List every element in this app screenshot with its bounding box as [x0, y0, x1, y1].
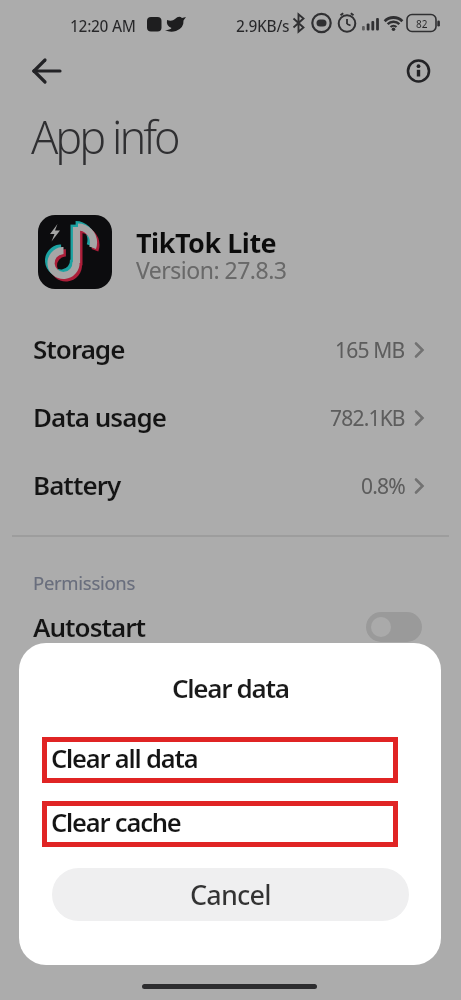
staticText: 12:20 AM	[70, 15, 136, 36]
staticText: Clear data	[172, 670, 289, 705]
button[interactable]	[24, 56, 68, 88]
staticText: Permissions	[33, 570, 136, 595]
button[interactable]: Autostart	[0, 605, 461, 650]
button[interactable]: Cancel	[52, 868, 409, 921]
staticText: TikTok Lite	[136, 224, 277, 254]
staticText: Clear all data	[51, 741, 198, 776]
staticText: Clear cache	[51, 805, 181, 840]
staticText: Cancel	[190, 876, 271, 913]
button[interactable]: Data usage	[0, 388, 461, 448]
staticText: 2.9KB/s	[236, 15, 290, 36]
staticText: 0.8%	[361, 472, 405, 501]
staticText: Battery	[33, 467, 121, 502]
staticText: Autostart	[33, 609, 146, 644]
staticText: App info	[31, 106, 178, 167]
button[interactable]: Clear all data	[42, 737, 398, 783]
button[interactable]: Battery	[0, 456, 461, 516]
button[interactable]: Clear cache	[42, 801, 398, 847]
button[interactable]	[404, 57, 434, 87]
button[interactable]: Storage	[0, 320, 461, 380]
staticText: Storage	[33, 331, 125, 366]
staticText: 165 MB	[335, 336, 405, 365]
staticText: Version: 27.8.3	[136, 254, 287, 279]
staticText: 782.1KB	[330, 404, 405, 433]
staticText: 82	[416, 17, 428, 31]
staticText: Data usage	[33, 399, 166, 434]
